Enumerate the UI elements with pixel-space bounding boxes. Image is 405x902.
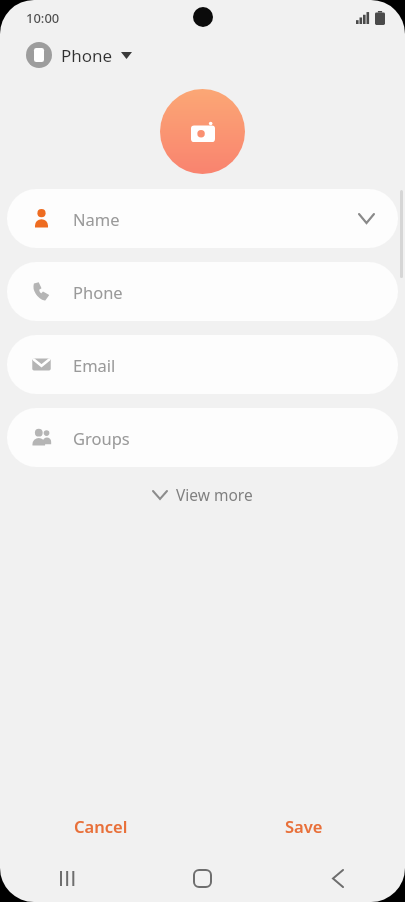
staticText: View more (176, 484, 253, 505)
staticText: Email (73, 354, 116, 376)
button[interactable]: Name (7, 189, 398, 248)
staticText: Cancel (74, 815, 128, 837)
button[interactable]: Add contact photo (160, 89, 245, 174)
staticText: Phone (61, 44, 113, 67)
staticText: 10:00 (26, 9, 60, 27)
button[interactable]: Phone (22, 36, 136, 74)
button[interactable]: Cancel (0, 798, 202, 854)
button[interactable]: Phone (7, 262, 398, 321)
staticText: Phone (73, 281, 123, 303)
button[interactable]: View more (141, 477, 265, 512)
staticText: Name (73, 208, 120, 230)
button[interactable]: Save (202, 798, 405, 854)
button[interactable]: Groups (7, 408, 398, 467)
staticText: Groups (73, 427, 130, 449)
button[interactable]: Back (270, 854, 405, 902)
staticText: Save (285, 815, 323, 837)
button[interactable]: Home (135, 854, 270, 902)
button[interactable]: Email (7, 335, 398, 394)
button[interactable]: Recent apps (0, 854, 135, 902)
